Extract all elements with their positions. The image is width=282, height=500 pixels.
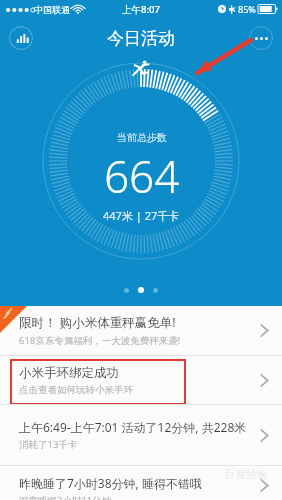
staticText: 664 [104, 146, 180, 206]
staticText: 百度经验 [224, 467, 268, 481]
staticText: 消耗了13千卡 [19, 438, 78, 451]
staticText: 昨晚睡了7小时38分钟, 睡得不错哦 [19, 475, 202, 491]
staticText: 今日活动 [107, 28, 175, 49]
staticText: 上午8:07 [122, 3, 160, 16]
staticText: 85% [238, 3, 256, 15]
staticText: 限时！ 购小米体重秤赢免单! [19, 314, 176, 331]
button[interactable]: 限时！ 购小米体重秤赢免单! [0, 306, 282, 355]
button[interactable]: Statistics [9, 26, 33, 50]
staticText: 618京东专属福利，一大波免费秤来袭! [19, 334, 181, 347]
staticText: 447米 | 27千卡 [103, 208, 180, 223]
button[interactable]: 上午6:49-上午7:01 活动了12分钟, 共228米 [0, 405, 282, 465]
staticText: 上午6:49-上午7:01 活动了12分钟, 共228米 [19, 419, 247, 435]
button[interactable]: 小米手环绑定成功 [0, 356, 282, 404]
staticText: 点击查看如何玩转小米手环 [19, 384, 133, 396]
staticText: 小米手环绑定成功 [19, 365, 119, 381]
staticText: 当前总步数 [117, 131, 167, 144]
button[interactable]: More options [249, 26, 273, 50]
button[interactable]: 昨晚睡了7小时38分钟, 睡得不错哦 [0, 466, 282, 500]
staticText: 中国联通 [34, 4, 70, 15]
staticText: 深度睡眠3小时11分钟 [19, 494, 112, 500]
